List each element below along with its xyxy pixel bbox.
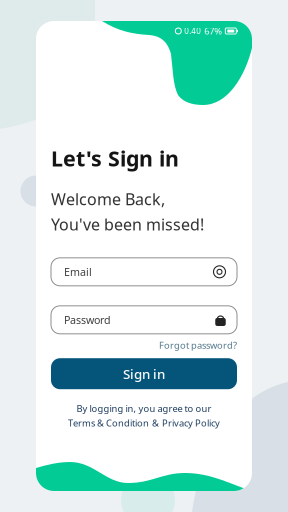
staticText: You've been missed! [51, 214, 204, 235]
staticText: Let's Sign in [51, 144, 179, 172]
staticText: & [152, 417, 159, 429]
staticText: By logging in, you agree to our [76, 402, 211, 415]
button[interactable]: Email [51, 258, 237, 286]
button[interactable]: Sign in [51, 358, 237, 389]
button[interactable]: Privacy Policy [162, 417, 220, 429]
button[interactable]: Terms & Condition [68, 417, 149, 429]
staticText: Terms & Condition [68, 417, 149, 429]
staticText: 0.40 [184, 26, 201, 36]
staticText: Forgot password? [159, 339, 237, 351]
staticText: Email [64, 265, 92, 279]
staticText: Sign in [123, 365, 165, 383]
staticText: Password [64, 313, 111, 327]
staticText: Privacy Policy [162, 417, 220, 429]
staticText: 67% [204, 25, 222, 37]
button[interactable]: Forgot password? [159, 339, 237, 351]
staticText: Welcome Back, [51, 188, 165, 209]
button[interactable]: Password [51, 306, 237, 334]
